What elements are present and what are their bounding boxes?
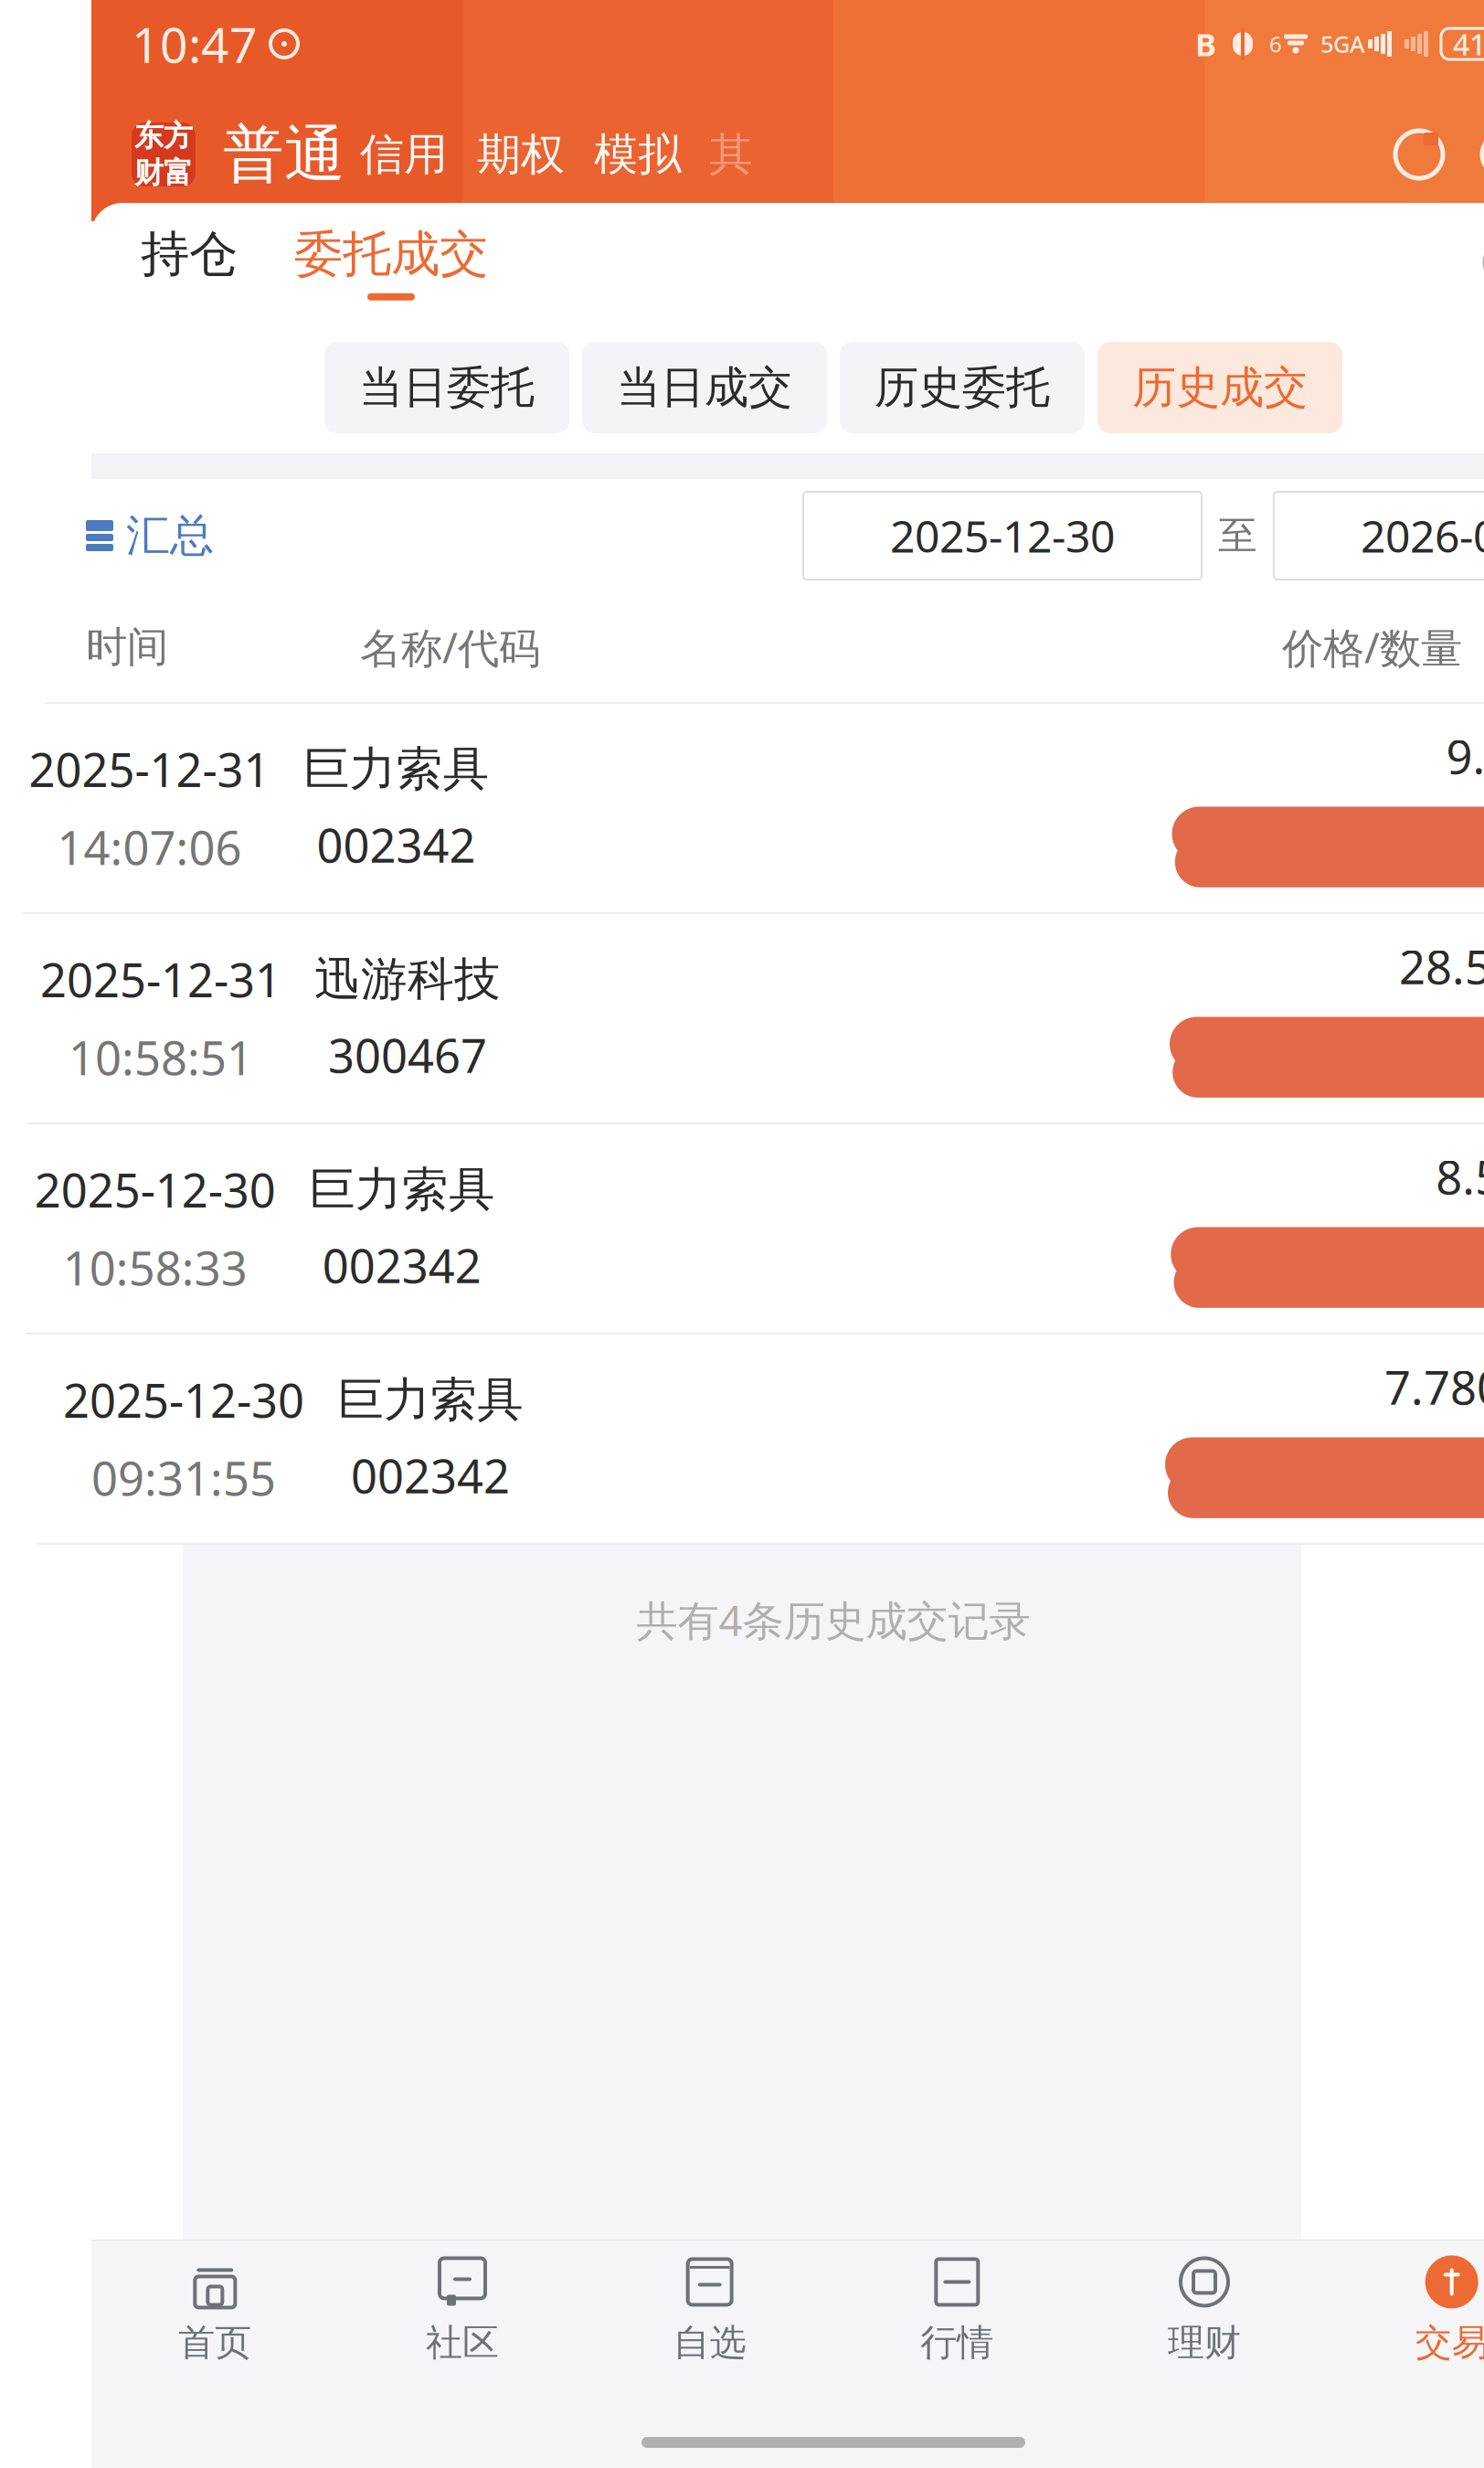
staticText: B (1195, 23, 1216, 65)
staticText: 巨力索具 (337, 1371, 524, 1428)
staticText: 名称/代码 (360, 620, 540, 675)
staticText: 期权 (477, 128, 565, 181)
staticText: 持仓 (141, 224, 238, 284)
button[interactable]: 汇总 (86, 509, 214, 563)
button[interactable]: 2025-12-31 (9, 914, 1484, 1124)
button[interactable]: 2025-12-30 (27, 1335, 1484, 1545)
staticText: 2025-12-30 (35, 1159, 276, 1220)
staticText: 6 (1269, 29, 1282, 59)
button[interactable]: 信用 (345, 128, 462, 181)
button[interactable]: 委托成交 (247, 224, 488, 300)
staticText: 社区 (426, 2320, 499, 2365)
staticText: 财富 (134, 155, 193, 191)
staticText: 8.560 (1436, 1146, 1484, 1207)
staticText: 9.180 (1446, 725, 1484, 787)
staticText: 行情 (920, 2320, 994, 2365)
staticText: 其 (709, 128, 753, 181)
button[interactable]: 交易 (1328, 2242, 1484, 2378)
staticText: 价格/数量 (1282, 620, 1462, 675)
staticText: 信用 (360, 128, 448, 181)
button[interactable]: 模拟 (579, 128, 696, 181)
staticText: 历史委托 (874, 361, 1050, 415)
button[interactable]: 2026-01-05 (1274, 492, 1484, 580)
button[interactable]: 2025-12-30 (803, 492, 1202, 580)
staticText: 迅游科技 (314, 951, 501, 1008)
staticText: 当日成交 (617, 361, 792, 415)
staticText: 委托成交 (294, 224, 488, 284)
staticText: 理财 (1168, 2320, 1241, 2365)
button[interactable]: 当日成交 (582, 342, 827, 433)
button[interactable]: 首页 (91, 2242, 339, 2378)
button[interactable]: 历史成交 (1097, 342, 1342, 433)
button[interactable]: 2025-12-31 (0, 704, 1484, 914)
button[interactable]: 持仓 (132, 224, 247, 300)
staticText: 巨力索具 (309, 1161, 495, 1218)
button[interactable]: 自选 (586, 2242, 833, 2378)
button[interactable]: 搜索 (1471, 122, 1484, 186)
staticText: 10:58:51 (69, 1027, 253, 1088)
staticText: 09:31:55 (91, 1447, 276, 1508)
button[interactable]: 社区 (339, 2242, 586, 2378)
staticText: 至 (1218, 512, 1257, 560)
staticText: 002342 (351, 1445, 510, 1506)
staticText: 28.590 (1399, 935, 1484, 997)
staticText: 2025-12-30 (890, 506, 1115, 565)
staticText: 2026-01-05 (1361, 506, 1484, 565)
staticText: 普通 (223, 117, 345, 192)
staticText: 时间 (86, 622, 168, 673)
staticText: 2025-12-31 (29, 738, 270, 800)
staticText: 交易 (1415, 2320, 1484, 2365)
button[interactable]: 2025-12-30 (5, 1124, 1484, 1335)
staticText: 5GA (1320, 29, 1365, 59)
staticText: 300467 (328, 1024, 487, 1086)
staticText: 汇总 (126, 509, 214, 563)
staticText: 10:58:33 (63, 1237, 247, 1298)
staticText: 2025-12-31 (40, 949, 281, 1010)
staticText: 共有4条历史成交记录 (636, 1592, 1030, 1647)
button[interactable]: 其 (696, 128, 753, 181)
staticText: 7.780 (1384, 1356, 1484, 1417)
button[interactable]: 期权 (462, 128, 579, 181)
button[interactable]: 设置 (1475, 232, 1484, 293)
staticText: 10:47 (132, 12, 258, 76)
button[interactable]: 历史委托 (840, 342, 1085, 433)
staticText: 2025-12-30 (63, 1369, 304, 1431)
button[interactable]: 刷新 (1387, 122, 1451, 186)
staticText: 历史成交 (1132, 361, 1308, 415)
button[interactable]: 行情 (833, 2242, 1081, 2378)
staticText: 002342 (322, 1234, 481, 1296)
staticText: 当日委托 (359, 361, 535, 415)
staticText: 14:07:06 (57, 816, 242, 878)
staticText: 模拟 (594, 128, 682, 181)
staticText: 41 (1453, 24, 1484, 63)
button[interactable]: 当日委托 (324, 342, 569, 433)
staticText: 首页 (178, 2320, 252, 2365)
staticText: 自选 (673, 2320, 746, 2365)
staticText: 002342 (317, 814, 476, 876)
button[interactable]: 理财 (1081, 2242, 1328, 2378)
staticText: 东方 (134, 118, 193, 154)
staticText: 巨力索具 (303, 741, 489, 797)
